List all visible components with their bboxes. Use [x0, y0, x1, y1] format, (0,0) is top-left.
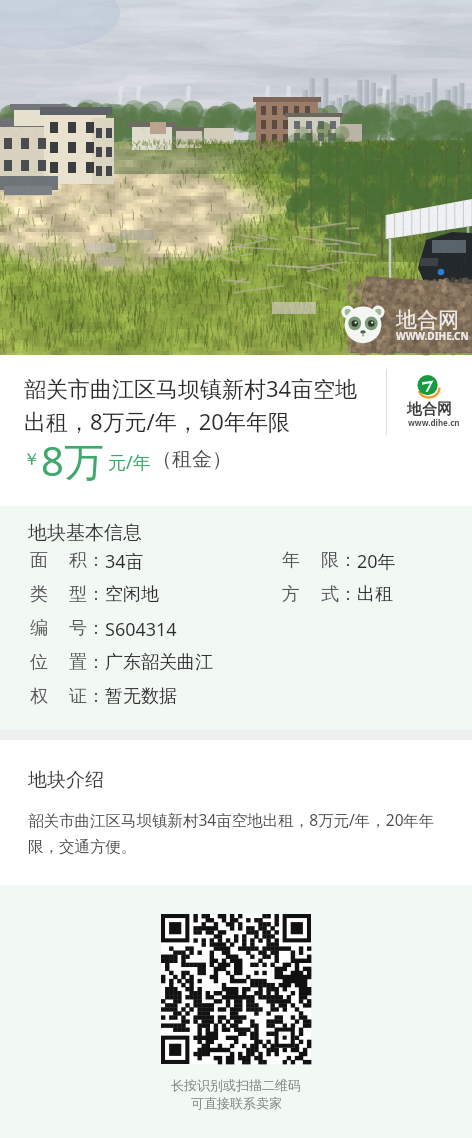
- staticText: WWW.DIHE.CN: [396, 329, 469, 343]
- staticText: 积：: [69, 549, 105, 572]
- staticText: 置：: [69, 651, 105, 674]
- staticText: （租金）: [152, 447, 232, 472]
- staticText: 可直接联系卖家: [191, 1095, 282, 1111]
- staticText: 权: [30, 685, 48, 708]
- staticText: 方: [282, 583, 300, 606]
- staticText: 20年: [357, 549, 396, 574]
- staticText: 空闲地: [105, 583, 159, 606]
- staticText: 广东韶关曲江: [105, 651, 213, 674]
- staticText: 编: [30, 617, 48, 640]
- staticText: 34亩: [105, 549, 144, 574]
- staticText: 长按识别或扫描二维码: [171, 1077, 301, 1093]
- staticText: 出租: [357, 583, 393, 606]
- button[interactable]: 长按识别二维码联系卖家: [161, 914, 311, 1064]
- staticText: www.dihe.cn: [408, 417, 460, 428]
- staticText: 号：: [69, 617, 105, 640]
- staticText: 8万: [41, 433, 104, 488]
- staticText: 限：: [321, 549, 357, 572]
- staticText: 地合网: [407, 400, 452, 419]
- staticText: 证：: [69, 685, 105, 708]
- staticText: 年: [282, 549, 300, 572]
- staticText: 型：: [69, 583, 105, 606]
- staticText: S604314: [105, 617, 177, 642]
- staticText: 位: [30, 651, 48, 674]
- button[interactable]: 地块照片: [0, 0, 472, 353]
- staticText: 暂无数据: [105, 685, 177, 708]
- staticText: 地合网: [396, 307, 459, 333]
- staticText: 元/年: [108, 450, 151, 475]
- staticText: 式：: [321, 583, 357, 606]
- staticText: 韶关市曲江区马坝镇新村34亩空地出租，8万元/年，20年年限: [24, 373, 362, 437]
- staticText: 韶关市曲江区马坝镇新村34亩空地出租，8万元/年，20年年限，交通方便。: [28, 809, 448, 857]
- button[interactable]: 地合网 www.dihe.cn: [396, 372, 466, 432]
- staticText: ￥: [23, 449, 40, 470]
- staticText: 类: [30, 583, 48, 606]
- staticText: 地块介绍: [28, 768, 104, 792]
- staticText: 面: [30, 549, 48, 572]
- staticText: 地块基本信息: [28, 521, 142, 545]
